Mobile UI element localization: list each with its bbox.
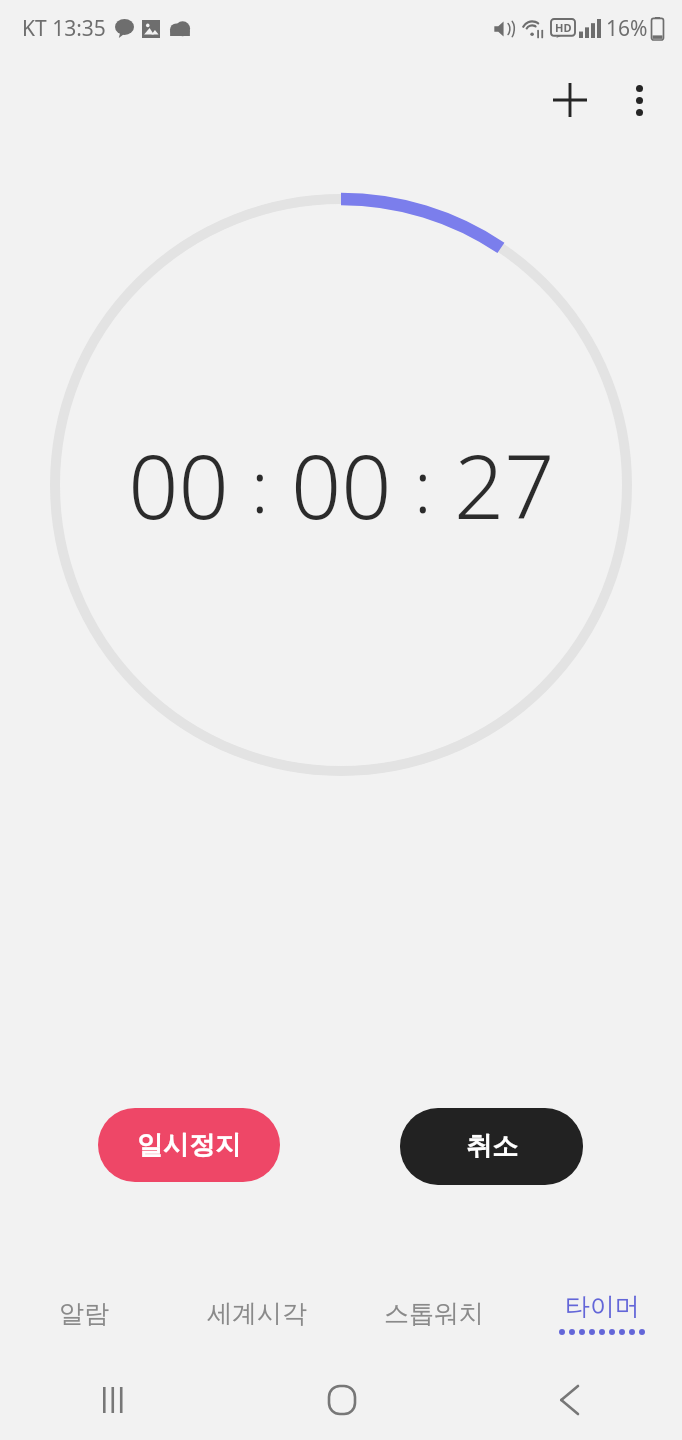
- staticText: 스톱워치: [384, 1298, 484, 1329]
- staticText: 00: [291, 425, 392, 545]
- staticText: 알람: [59, 1298, 109, 1329]
- button[interactable]: 세계시각: [168, 1276, 345, 1350]
- button[interactable]: 타이머: [522, 1276, 682, 1350]
- button[interactable]: 일시정지: [98, 1108, 280, 1182]
- staticText: 취소: [466, 1130, 518, 1163]
- staticText: HD: [555, 20, 572, 35]
- staticText: 00: [128, 425, 229, 545]
- staticText: 타이머: [565, 1291, 640, 1322]
- button[interactable]: 알람: [0, 1276, 168, 1350]
- button[interactable]: Home: [228, 1360, 455, 1440]
- staticText: 27: [454, 425, 555, 545]
- staticText: 세계시각: [207, 1298, 307, 1329]
- button[interactable]: More options: [606, 67, 672, 133]
- button[interactable]: Recent apps: [0, 1360, 228, 1440]
- button[interactable]: 스톱워치: [345, 1276, 522, 1350]
- button[interactable]: 취소: [400, 1108, 583, 1185]
- staticText: :: [414, 436, 432, 534]
- staticText: 일시정지: [137, 1129, 241, 1162]
- button[interactable]: Add timer: [534, 64, 606, 136]
- staticText: :: [251, 436, 269, 534]
- staticText: KT 13:35: [22, 14, 106, 43]
- button[interactable]: Back: [455, 1360, 682, 1440]
- staticText: 16%: [606, 14, 648, 43]
